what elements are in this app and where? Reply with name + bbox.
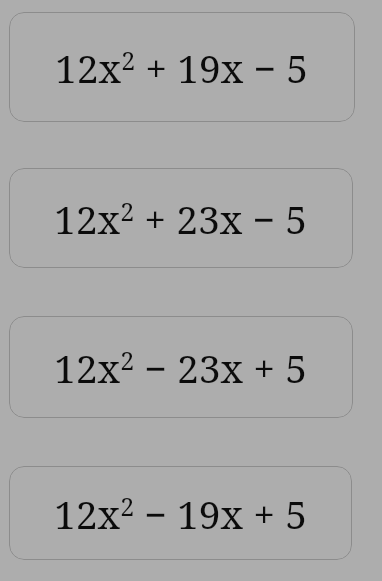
staticText: 12x2 + 23x − 5 bbox=[54, 192, 308, 245]
staticText: 12x2 + 19x − 5 bbox=[55, 41, 309, 94]
staticText: 12x2 − 23x + 5 bbox=[54, 341, 308, 394]
button[interactable]: 12x2 − 23x + 5 bbox=[9, 316, 353, 418]
button[interactable]: 12x2 + 23x − 5 bbox=[9, 168, 353, 268]
button[interactable]: 12x2 − 19x + 5 bbox=[9, 466, 352, 560]
button[interactable]: 12x2 + 19x − 5 bbox=[9, 12, 355, 122]
staticText: 12x2 − 19x + 5 bbox=[54, 487, 308, 540]
